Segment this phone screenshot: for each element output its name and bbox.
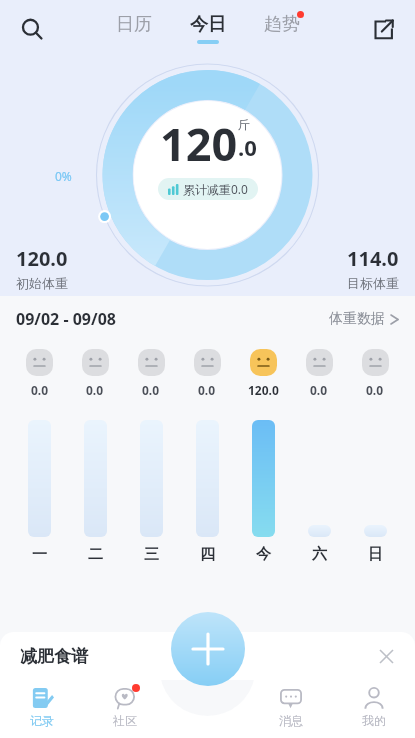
button[interactable]: 添加记录: [171, 612, 245, 686]
staticText: 消息: [279, 713, 303, 728]
button[interactable]: 累计减重0.0: [158, 178, 258, 200]
staticText: 三: [144, 545, 159, 564]
button[interactable]: 搜索: [12, 9, 52, 49]
button[interactable]: 0.0: [179, 349, 235, 564]
staticText: 目标体重: [347, 275, 399, 291]
staticText: 一: [32, 545, 47, 564]
button[interactable]: 社区: [83, 676, 166, 738]
staticText: 记录: [30, 713, 54, 728]
staticText: 减肥食谱: [20, 646, 88, 667]
button[interactable]: 0.0: [347, 349, 403, 564]
staticText: 累计减重0.0: [183, 181, 248, 197]
staticText: 体重数据: [329, 310, 385, 328]
button[interactable]: 今日: [186, 11, 230, 46]
staticText: 初始体重: [16, 275, 68, 291]
button[interactable]: 0.0: [123, 349, 179, 564]
staticText: .0: [238, 132, 257, 162]
staticText: 0.0: [310, 382, 328, 398]
staticText: 我的: [362, 713, 386, 728]
button[interactable]: 0.0: [67, 349, 123, 564]
staticText: 今日: [190, 13, 226, 36]
staticText: 今: [256, 545, 271, 564]
staticText: 0%: [55, 168, 72, 184]
staticText: 日: [368, 545, 383, 564]
staticText: 114.0: [347, 245, 399, 272]
staticText: 0.0: [366, 382, 384, 398]
staticText: 社区: [113, 713, 137, 728]
staticText: 120.0: [248, 382, 279, 398]
staticText: 四: [200, 545, 215, 564]
button[interactable]: 我的: [332, 676, 415, 738]
staticText: 二: [88, 545, 103, 564]
button[interactable]: 记录: [0, 676, 83, 738]
staticText: 09/02 - 09/08: [16, 308, 116, 330]
staticText: 0.0: [198, 382, 216, 398]
button[interactable]: 趋势: [260, 11, 304, 46]
staticText: 0.0: [86, 382, 104, 398]
staticText: 日历: [116, 13, 152, 36]
staticText: 120.0: [16, 245, 68, 272]
staticText: 斤: [238, 117, 250, 132]
staticText: 0.0: [142, 382, 160, 398]
button[interactable]: 消息: [249, 676, 332, 738]
button[interactable]: 体重数据: [325, 306, 403, 332]
staticText: 0.0: [31, 382, 49, 398]
button[interactable]: 分享: [363, 9, 403, 49]
button[interactable]: 关闭: [371, 641, 401, 671]
button[interactable]: 日历: [112, 11, 156, 46]
staticText: 趋势: [264, 13, 300, 36]
button[interactable]: 减肥食谱: [0, 632, 415, 680]
staticText: 六: [312, 545, 327, 564]
button[interactable]: 0.0: [291, 349, 347, 564]
staticText: 120: [160, 113, 238, 174]
button[interactable]: 0.0: [12, 349, 67, 564]
button[interactable]: 120.0: [235, 349, 291, 564]
